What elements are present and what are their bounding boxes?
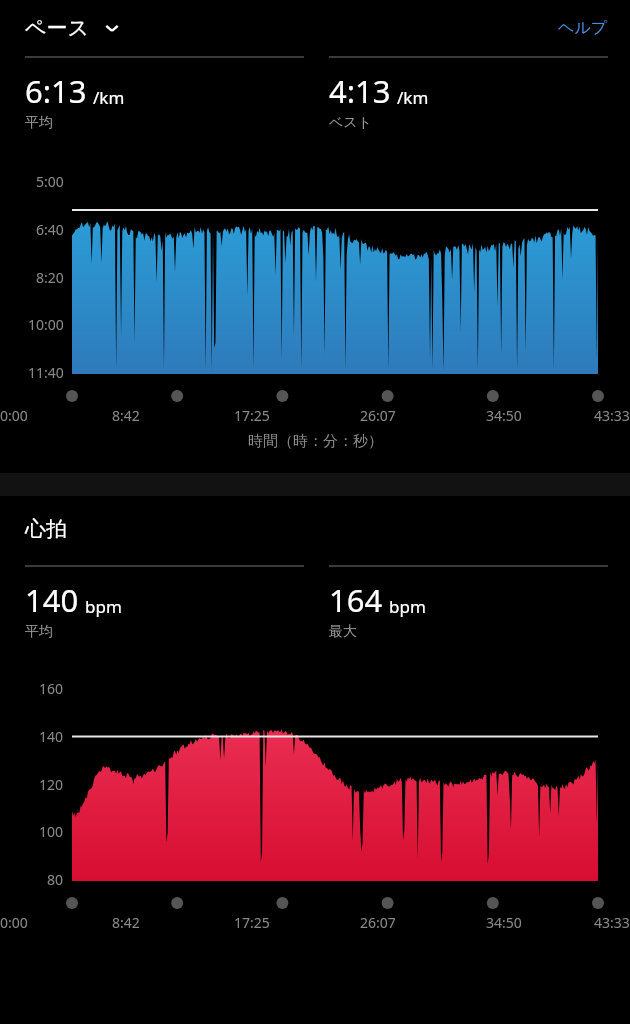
- button[interactable]: 6:13: [25, 56, 304, 132]
- staticText: 140: [39, 727, 64, 746]
- staticText: 0:00: [0, 406, 28, 425]
- staticText: 8:42: [112, 406, 140, 425]
- staticText: ペース: [25, 15, 89, 41]
- button[interactable]: ヘルプ: [558, 18, 608, 38]
- staticText: 160: [39, 679, 64, 698]
- button[interactable]: ペース: [25, 15, 121, 41]
- staticText: 平均: [25, 623, 53, 641]
- staticText: 17:25: [234, 913, 270, 932]
- staticText: 43:33: [594, 913, 630, 932]
- button[interactable]: 140: [25, 565, 304, 641]
- staticText: 26:07: [360, 913, 396, 932]
- staticText: 26:07: [360, 406, 396, 425]
- staticText: 34:50: [486, 913, 522, 932]
- staticText: 140: [25, 579, 79, 621]
- other: Change metric: [103, 19, 121, 37]
- staticText: 120: [39, 775, 64, 794]
- button[interactable]: 4:13: [329, 56, 608, 132]
- staticText: 11:40: [28, 363, 64, 382]
- staticText: 17:25: [234, 406, 270, 425]
- staticText: 6:40: [36, 220, 64, 239]
- staticText: 100: [39, 822, 64, 841]
- staticText: ヘルプ: [558, 18, 608, 38]
- staticText: 164: [329, 579, 383, 621]
- staticText: 5:00: [36, 172, 64, 191]
- staticText: 8:20: [36, 268, 64, 287]
- staticText: 6:13: [25, 70, 87, 112]
- staticText: /km: [397, 86, 429, 109]
- staticText: bpm: [389, 595, 426, 618]
- staticText: 0:00: [0, 913, 28, 932]
- button[interactable]: 164: [329, 565, 608, 641]
- staticText: /km: [93, 86, 125, 109]
- staticText: 平均: [25, 114, 53, 132]
- staticText: ベスト: [329, 114, 372, 132]
- staticText: 8:42: [112, 913, 140, 932]
- staticText: 4:13: [329, 70, 391, 112]
- staticText: 43:33: [594, 406, 630, 425]
- staticText: bpm: [85, 595, 122, 618]
- staticText: 80: [47, 870, 64, 889]
- staticText: 10:00: [28, 315, 64, 334]
- staticText: 心拍: [25, 516, 67, 542]
- staticText: 最大: [329, 623, 357, 641]
- staticText: 時間（時：分：秒）: [248, 432, 383, 451]
- staticText: 34:50: [486, 406, 522, 425]
